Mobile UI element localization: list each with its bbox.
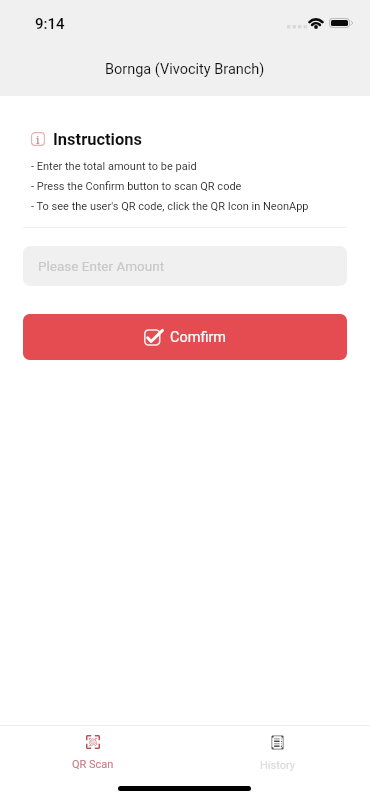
staticText: - Press the Confirm button to scan QR co… [31, 180, 242, 193]
staticText: - Enter the total amount to be paid [31, 160, 197, 173]
staticText: History [260, 759, 295, 772]
button[interactable]: Comfirm [23, 314, 347, 360]
staticText: 9:14 [35, 15, 65, 33]
staticText: - To see the user's QR code, click the Q… [31, 200, 309, 213]
staticText: Comfirm [170, 329, 227, 346]
other: QR Scan [86, 735, 100, 749]
button[interactable]: QR Scan [0, 726, 185, 771]
staticText: QR Scan [72, 758, 114, 771]
staticText: Please Enter Amount [38, 258, 165, 274]
staticText: i [36, 132, 40, 146]
button[interactable]: History [185, 726, 370, 772]
staticText: Instructions [53, 130, 143, 149]
button[interactable]: Please Enter Amount [23, 246, 347, 286]
staticText: Bornga (Vivocity Branch) [105, 61, 265, 78]
other: History [271, 735, 284, 750]
